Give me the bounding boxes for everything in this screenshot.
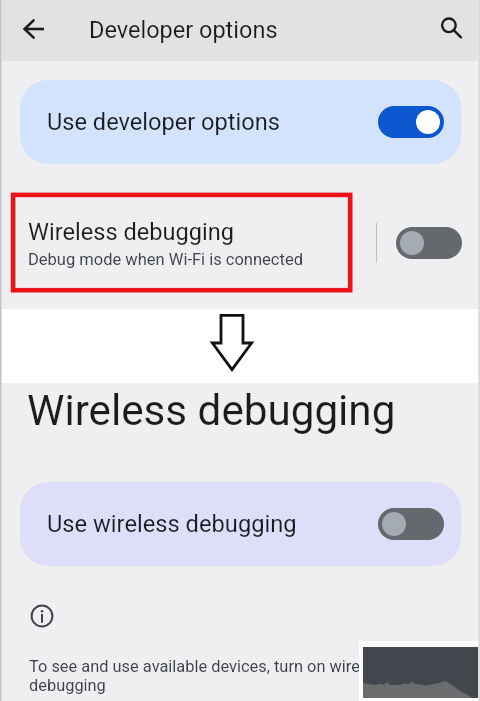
button[interactable]: Turn off xyxy=(378,106,444,138)
staticText: To see and use available devices, turn o… xyxy=(29,657,429,695)
button[interactable]: Wireless debugging xyxy=(28,218,303,269)
staticText: Use developer options xyxy=(47,108,280,136)
button[interactable]: Use developer options xyxy=(20,80,461,164)
staticText: Use wireless debugging xyxy=(47,510,297,538)
button[interactable]: Use wireless debugging xyxy=(20,482,461,566)
button[interactable]: Turn on xyxy=(396,227,462,259)
staticText: Developer options xyxy=(89,16,278,44)
button[interactable]: Turn on xyxy=(378,508,444,540)
button[interactable]: Search xyxy=(427,6,475,54)
staticText: Debug mode when Wi-Fi is connected xyxy=(28,250,303,269)
staticText: Wireless debugging xyxy=(27,386,396,435)
staticText: Wireless debugging xyxy=(28,218,234,246)
button[interactable]: Back xyxy=(10,5,58,53)
